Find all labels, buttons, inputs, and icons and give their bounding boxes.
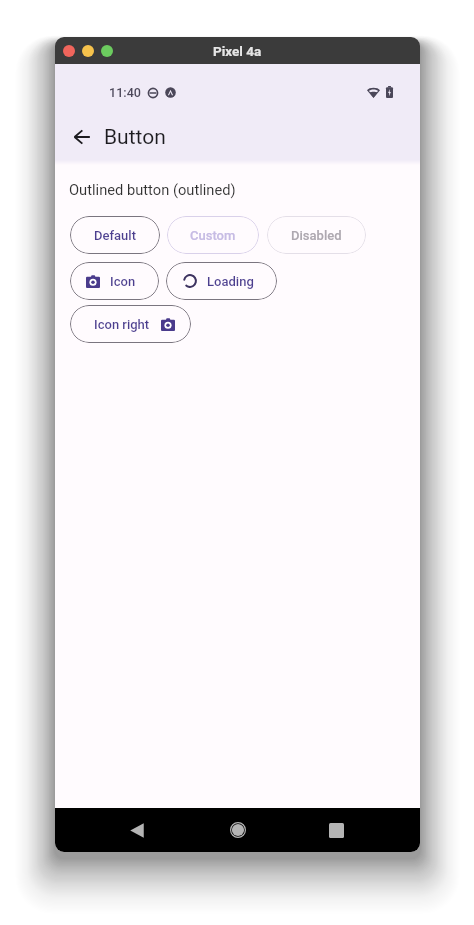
button[interactable]: Recent apps	[316, 810, 356, 850]
staticText: Outlined button (outlined)	[69, 181, 236, 198]
staticText: Pixel 4a	[213, 43, 262, 59]
button[interactable]: Back	[62, 117, 102, 157]
button[interactable]: Home	[218, 810, 258, 850]
button[interactable]: Disabled	[267, 216, 366, 254]
staticText: Icon	[110, 274, 136, 289]
staticText: Loading	[207, 274, 254, 289]
button[interactable]: Custom	[167, 216, 259, 254]
staticText: 11:40	[109, 85, 141, 100]
button[interactable]: Icon right	[70, 305, 191, 343]
button[interactable]: Icon	[70, 262, 159, 300]
staticText: Default	[94, 228, 136, 243]
button[interactable]: Loading	[166, 262, 277, 300]
staticText: Icon right	[94, 317, 150, 332]
staticText: Custom	[190, 228, 236, 243]
button[interactable]: Default	[70, 216, 160, 254]
staticText: Button	[104, 125, 166, 150]
staticText: Disabled	[291, 228, 342, 243]
button[interactable]: Back	[117, 810, 157, 850]
